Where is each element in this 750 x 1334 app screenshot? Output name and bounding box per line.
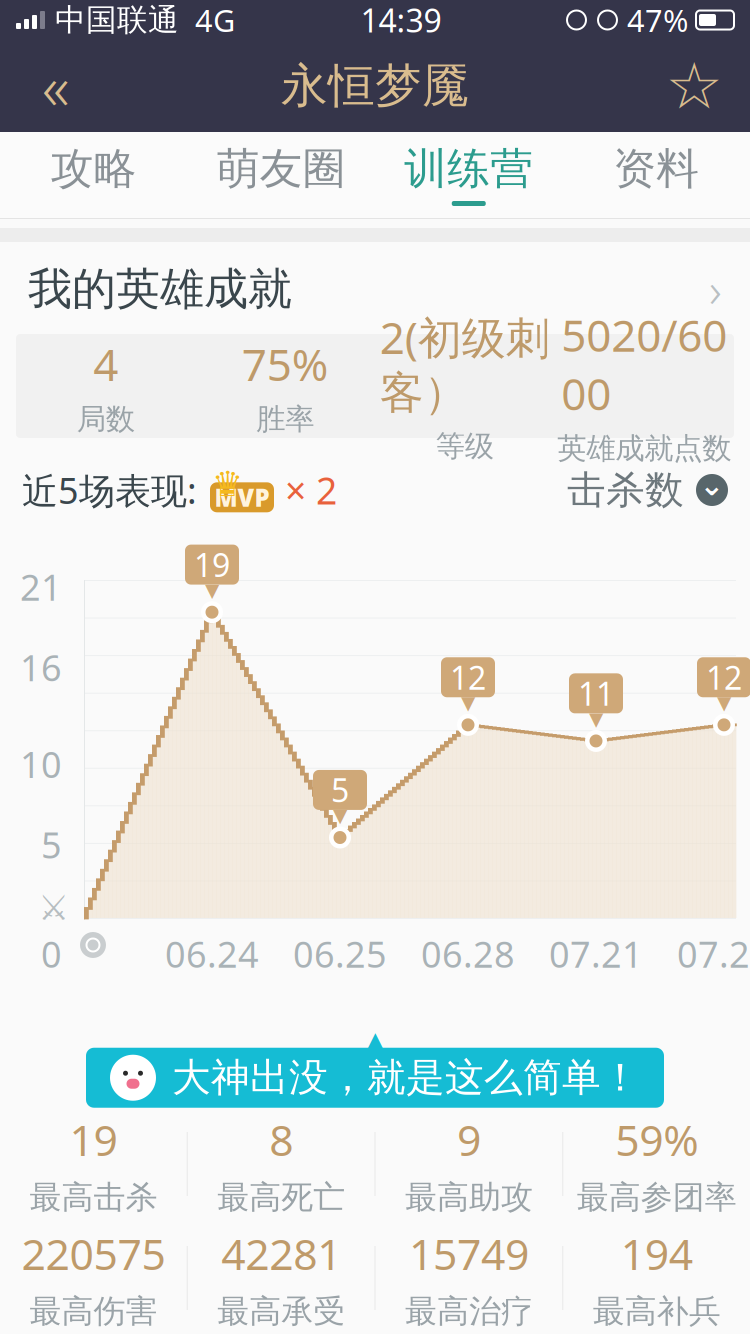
staticText: 5 [331,769,349,811]
staticText: 12 [706,656,742,698]
staticText: 最高伤害 [29,1292,157,1331]
staticText: 8 [269,1111,293,1168]
button[interactable]: 大神出没，就是这么简单！ [86,1048,664,1108]
staticText: 我的英雄成就 [28,262,292,316]
staticText: 4G [195,0,235,40]
staticText: ▼ [589,708,603,730]
staticText: 19 [194,543,230,586]
button[interactable]: 攻略 [0,132,187,218]
staticText: 4 [93,335,118,393]
staticText: 资料 [613,143,699,195]
staticText: 11 [578,672,614,715]
staticText: 萌友圈 [217,143,346,195]
staticText: « [42,45,70,127]
staticText: 5020/6000 [561,306,727,422]
staticText: 等级 [436,428,494,464]
staticText: 47% [627,0,688,40]
staticText: 最高治疗 [405,1292,533,1331]
staticText: 中国联通 [55,1,179,39]
button[interactable]: 我的英雄成就 [0,252,750,326]
staticText: ▼ [461,692,475,713]
staticText: 15749 [409,1225,529,1282]
staticText: 最高补兵 [593,1292,721,1331]
staticText: 训练营 [404,143,533,195]
staticText: 最高死亡 [217,1178,345,1217]
staticText: 42281 [221,1225,341,1282]
staticText: 12 [450,656,486,698]
staticText: 永恒梦魇 [281,57,469,115]
staticText: › [709,257,722,321]
button[interactable]: Back [8,40,104,132]
staticText: 最高助攻 [405,1178,533,1217]
staticText: 大神出没，就是这么简单！ [172,1054,640,1101]
button[interactable]: Favorite [646,40,742,132]
staticText: 最高承受 [217,1292,345,1331]
button[interactable]: 资料 [562,132,750,218]
button[interactable]: 萌友圈 [187,132,375,218]
staticText: 9 [457,1111,481,1168]
staticText: MVP [214,481,269,513]
staticText: 攻略 [51,143,137,195]
staticText: 21 [20,563,62,611]
staticText: 19 [69,1111,117,1168]
staticText: 胜率 [256,401,314,437]
staticText: ⌄ [699,468,724,502]
staticText: 194 [621,1225,693,1282]
staticText: 最高击杀 [29,1178,157,1217]
staticText: ⚔ [38,888,69,927]
staticText: ♛ [212,464,243,504]
staticText: 06.25 [293,930,387,978]
staticText: 07.21 [549,930,643,978]
staticText: 最高参团率 [577,1178,737,1217]
staticText: 0 [41,930,62,978]
staticText: ▲ [366,1027,383,1053]
staticText: 14:39 [360,0,441,41]
staticText: ▼ [717,692,731,713]
staticText: 击杀数 [567,466,684,514]
staticText: 近5场表现: [22,466,197,514]
staticText: 06.24 [165,930,259,978]
staticText: 英雄成就点数 [557,430,731,466]
button[interactable]: 训练营 [375,132,562,218]
staticText: 75% [242,335,329,393]
staticText: 220575 [21,1225,165,1282]
staticText: × 2 [285,465,337,515]
staticText: 5 [41,820,62,868]
staticText: 局数 [77,401,135,437]
staticText: ☆ [665,50,722,122]
staticText: 10 [20,740,62,788]
staticText: ▼ [333,805,347,826]
staticText: 06.28 [421,930,515,978]
button[interactable]: 击杀数 [567,466,728,514]
staticText: 59% [615,1111,698,1168]
staticText: 07.24 [677,930,750,978]
staticText: 2(初级刺客） [380,308,550,420]
staticText: ▼ [205,580,219,601]
staticText: 16 [20,643,62,691]
